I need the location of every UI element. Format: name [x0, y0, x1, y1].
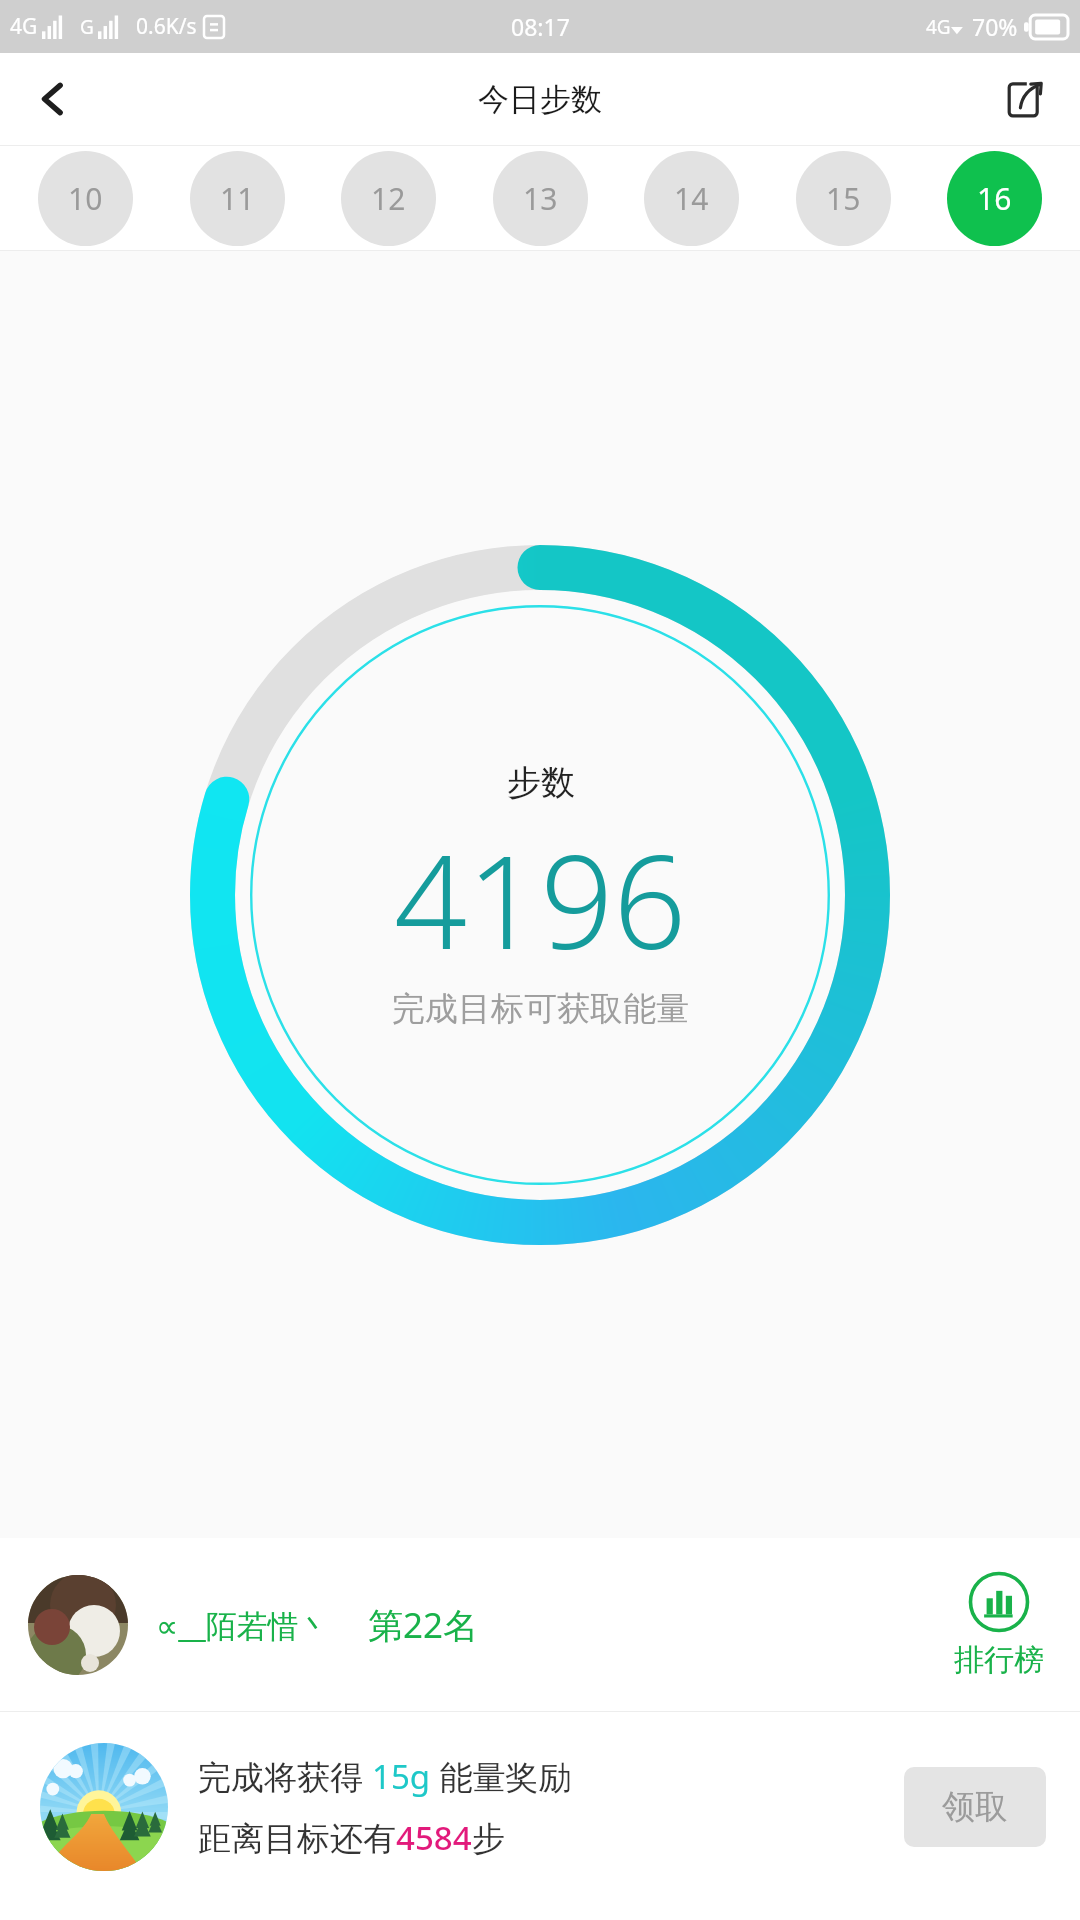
button[interactable]: 12	[341, 151, 436, 246]
staticText: 步	[472, 1818, 505, 1860]
staticText: 4G	[926, 14, 951, 40]
button[interactable]: 领取	[904, 1767, 1046, 1847]
button[interactable]: 11	[190, 151, 285, 246]
staticText: ∝__陌若惜丶	[156, 1604, 330, 1646]
button[interactable]: 15	[796, 151, 891, 246]
staticText: 0.6K/s	[136, 12, 197, 41]
staticText: 13	[523, 178, 558, 219]
staticText: 12	[371, 178, 406, 219]
staticText: 14	[674, 178, 709, 219]
staticText: 排行榜	[954, 1641, 1044, 1679]
staticText: 第22名	[368, 1601, 479, 1649]
staticText: 完成目标可获取能量	[392, 988, 689, 1030]
button[interactable]: Share	[994, 67, 1058, 131]
staticText: G	[80, 14, 94, 40]
staticText: 4196	[394, 812, 687, 986]
staticText: 15	[826, 178, 861, 219]
staticText: 完成将获得	[198, 1754, 372, 1799]
staticText: 能量奖励	[431, 1754, 572, 1799]
staticText: 步数	[507, 761, 575, 804]
staticText: 16	[977, 178, 1012, 219]
button[interactable]: Back	[22, 67, 86, 131]
staticText: 08:17	[511, 11, 570, 42]
staticText: 今日步数	[478, 80, 602, 119]
button[interactable]: 排行榜	[946, 1571, 1052, 1679]
staticText: 4G	[10, 12, 38, 41]
button[interactable]: 14	[644, 151, 739, 246]
staticText: 70%	[972, 11, 1018, 42]
button[interactable]: 13	[493, 151, 588, 246]
staticText: 领取	[942, 1786, 1008, 1828]
staticText: 11	[220, 178, 255, 219]
button[interactable]: 10	[38, 151, 133, 246]
staticText: 15g	[372, 1754, 431, 1799]
button[interactable]: ∝__陌若惜丶	[0, 1538, 1080, 1711]
button[interactable]: 16	[947, 151, 1042, 246]
staticText: 10	[68, 178, 103, 219]
staticText: 4584	[396, 1815, 472, 1860]
staticText: 距离目标还有	[198, 1818, 396, 1860]
